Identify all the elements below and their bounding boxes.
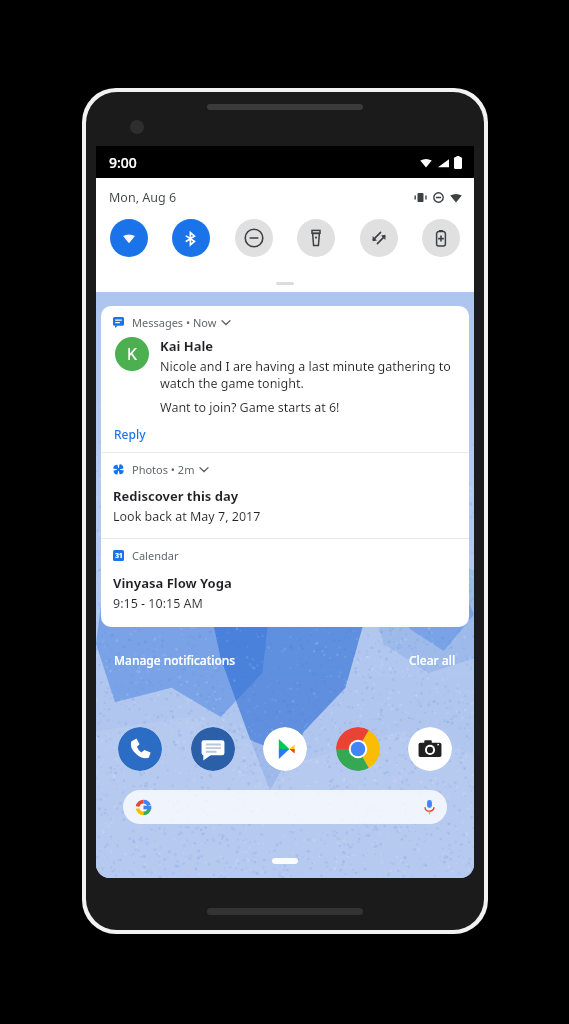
staticText: Look back at May 7, 2017	[113, 508, 261, 525]
staticText: Reply	[114, 426, 146, 442]
staticText: Calendar	[132, 548, 179, 563]
button[interactable]: Chrome	[336, 727, 380, 771]
staticText: Manage notifications	[114, 652, 236, 668]
button[interactable]: Photos • 2m	[101, 453, 469, 538]
button[interactable]: Wi-Fi	[110, 219, 148, 257]
button[interactable]: Bluetooth	[172, 219, 210, 257]
staticText: Photos • 2m	[132, 462, 195, 477]
staticText: K	[127, 343, 137, 365]
button[interactable]	[222, 320, 230, 325]
button[interactable]	[123, 790, 447, 824]
button[interactable]: Battery saver	[422, 219, 460, 257]
button[interactable]: Phone	[118, 727, 162, 771]
staticText: Want to join? Game starts at 6!	[160, 399, 340, 416]
staticText: Messages • Now	[132, 315, 217, 330]
button[interactable]: Messages • Now	[101, 306, 469, 452]
staticText: Nicole and I are having a last minute ga…	[160, 358, 457, 392]
button[interactable]: Clear all	[409, 652, 456, 668]
staticText: 31	[115, 551, 123, 560]
button[interactable]	[200, 467, 208, 472]
button[interactable]: Auto-rotate	[360, 219, 398, 257]
button[interactable]: Flashlight	[297, 219, 335, 257]
button[interactable]: Reply	[113, 425, 147, 443]
staticText: Mon, Aug 6	[109, 189, 177, 206]
staticText: Clear all	[409, 652, 456, 668]
button[interactable]: Messages	[191, 727, 235, 771]
staticText: 9:00	[109, 153, 137, 172]
staticText: 9:15 - 10:15 AM	[113, 595, 203, 612]
staticText: Vinyasa Flow Yoga	[113, 574, 232, 592]
staticText: Rediscover this day	[113, 487, 239, 505]
staticText: Kai Hale	[160, 337, 214, 355]
button[interactable]: 31	[101, 539, 469, 627]
button[interactable]: Do not disturb	[235, 219, 273, 257]
button[interactable]: Camera	[408, 727, 452, 771]
button[interactable]: Manage notifications	[114, 652, 236, 668]
button[interactable]: Play Store	[263, 727, 307, 771]
